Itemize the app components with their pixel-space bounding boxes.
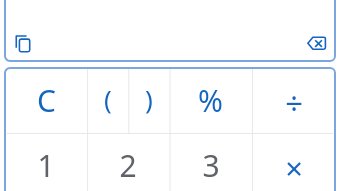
staticText: × (285, 147, 303, 189)
staticText: 1 (37, 145, 55, 186)
staticText: % (198, 80, 223, 121)
staticText: 2 (119, 145, 137, 186)
button[interactable]: ÷ (252, 68, 335, 133)
button[interactable]: ( (87, 68, 128, 133)
button[interactable]: ) (128, 68, 169, 133)
staticText: ) (145, 81, 153, 116)
button[interactable]: Copy (5, 25, 41, 61)
staticText: ÷ (285, 82, 303, 124)
button[interactable]: C (5, 68, 87, 133)
button[interactable]: Backspace (299, 25, 335, 61)
button[interactable]: × (252, 133, 335, 191)
staticText: ( (104, 81, 112, 116)
staticText: C (37, 80, 56, 121)
staticText: 3 (202, 145, 220, 186)
button[interactable]: % (169, 68, 252, 133)
button[interactable]: 1 (5, 133, 87, 191)
button[interactable]: 3 (169, 133, 252, 191)
button[interactable]: 2 (87, 133, 169, 191)
